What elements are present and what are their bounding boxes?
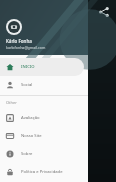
staticText: Política e Privacidade	[21, 169, 63, 175]
button[interactable]: INICIO	[0, 58, 84, 76]
button[interactable]: Nosso Site	[0, 127, 88, 145]
staticText: Kárlo Fonha	[6, 38, 32, 44]
button[interactable]: Sobre	[0, 145, 88, 163]
button[interactable]: Share	[96, 4, 112, 20]
button[interactable]: Política e Privacidade	[0, 163, 88, 181]
staticText: INICIO	[21, 64, 35, 70]
button[interactable]: Social	[0, 76, 88, 94]
staticText: karlofonha@gmail.com	[6, 45, 46, 50]
staticText: Other	[6, 100, 17, 105]
button[interactable]: Avaliação	[0, 109, 88, 127]
staticText: Nosso Site	[21, 133, 42, 139]
staticText: Social	[21, 82, 33, 88]
staticText: Sobre	[21, 151, 33, 157]
staticText: Avaliação	[21, 115, 40, 121]
